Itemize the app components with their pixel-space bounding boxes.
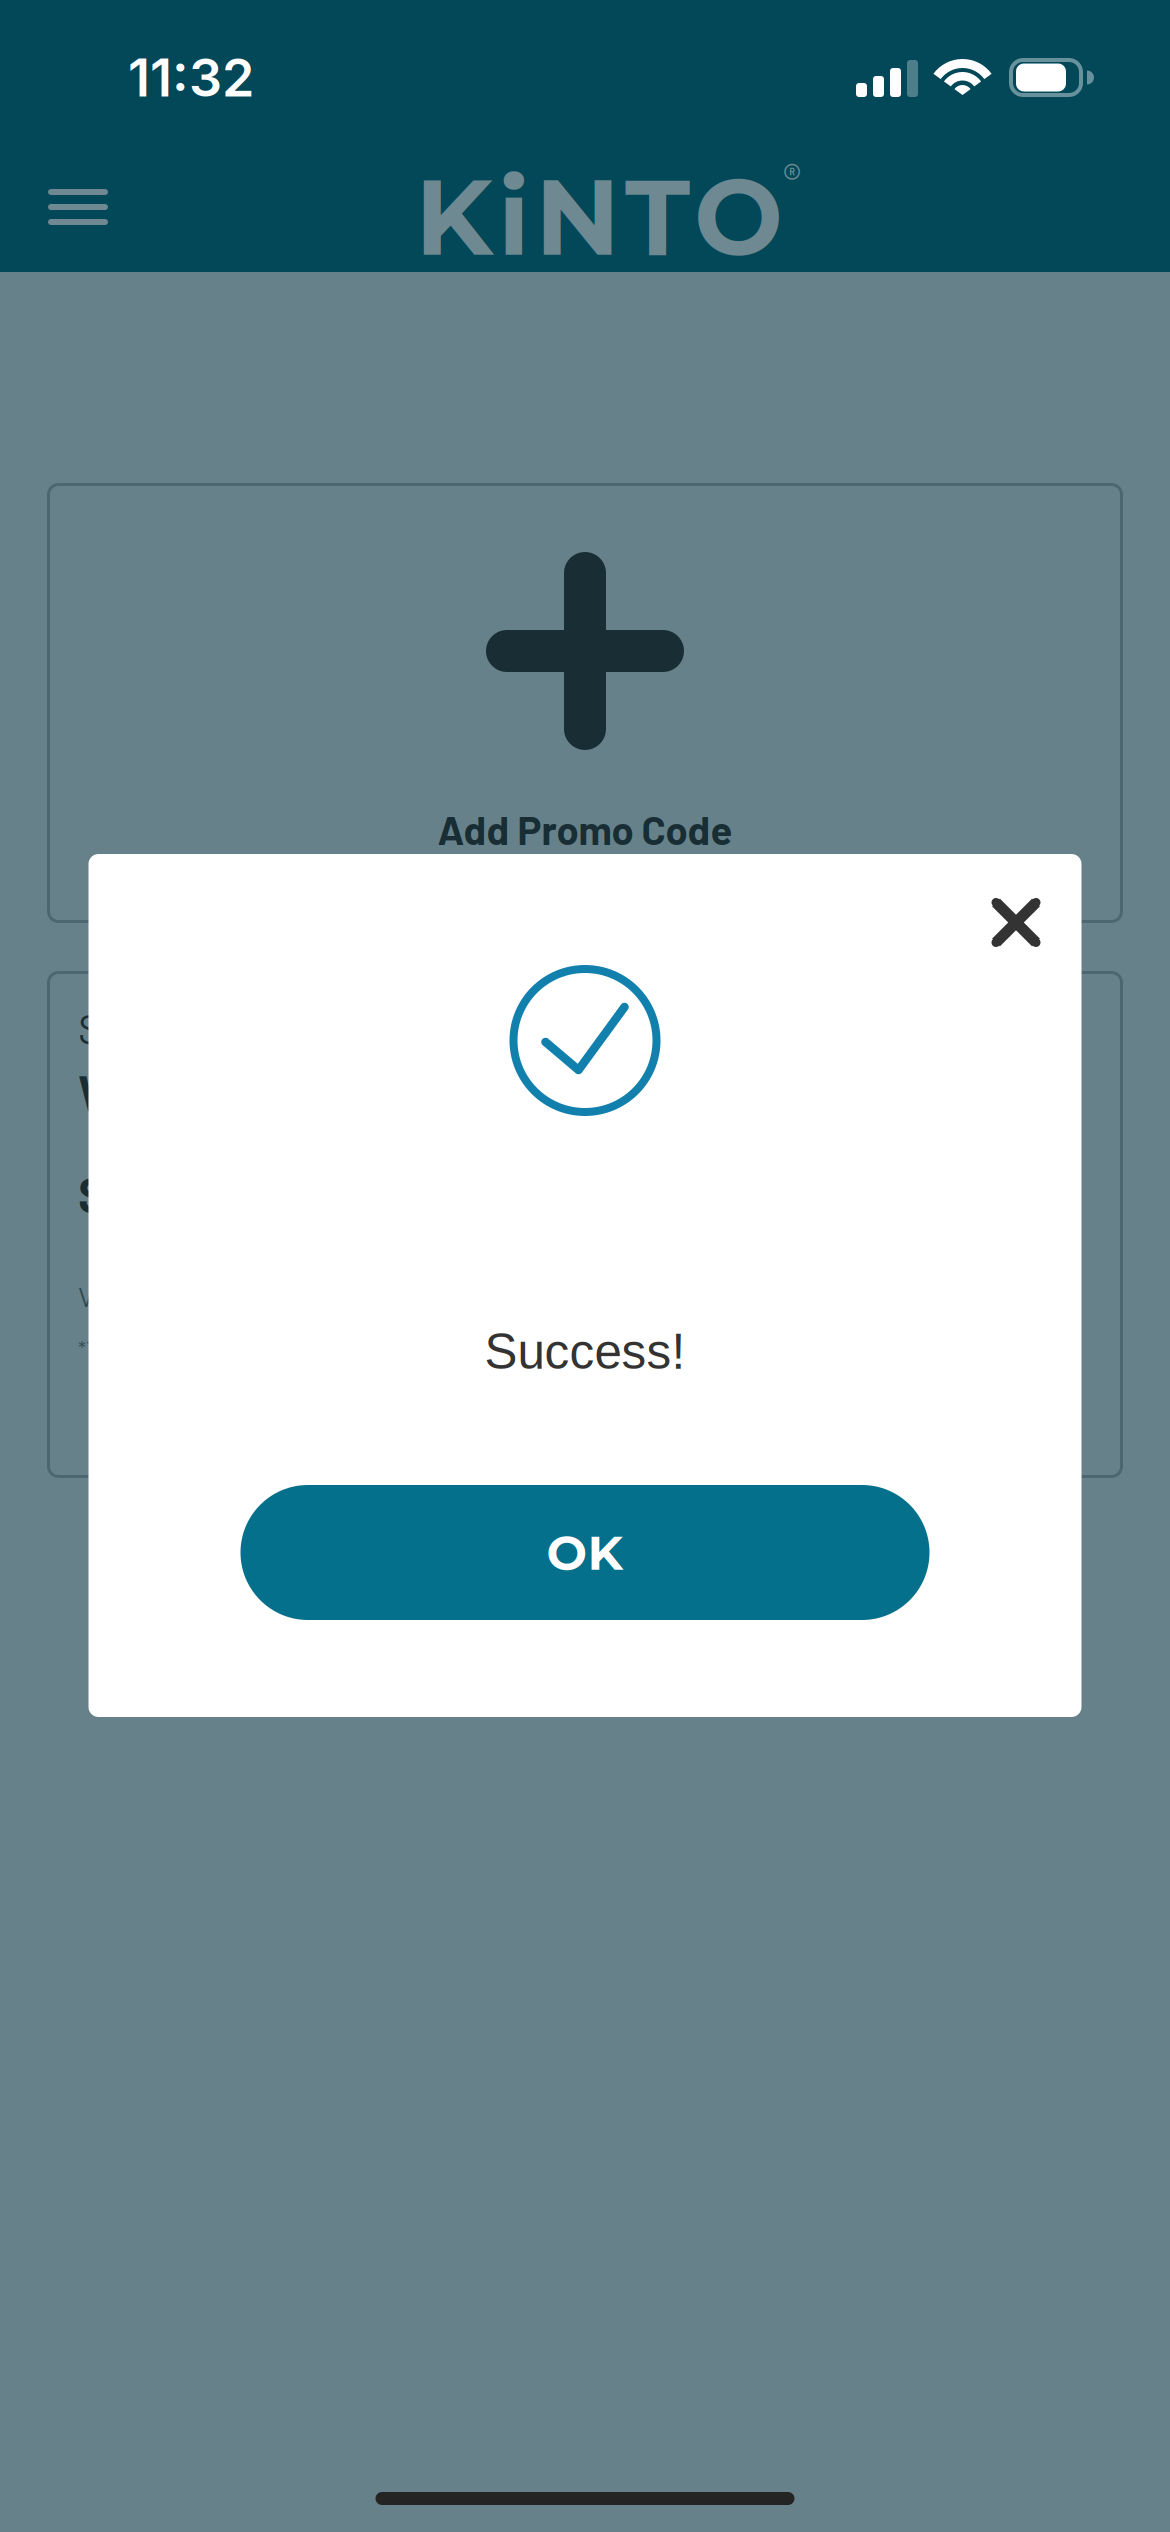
staticText: ®	[783, 153, 801, 201]
staticText: 11:32	[128, 46, 254, 109]
staticText: WIN A	[78, 1062, 210, 1121]
staticText: Add Promo Code	[437, 805, 732, 853]
staticText: Success!	[484, 1324, 685, 1379]
staticText: Save and	[78, 1003, 238, 1053]
button[interactable]: Add Promo Code	[47, 483, 1123, 923]
staticText: Voucher every month	[78, 1279, 335, 1313]
button[interactable]: OK	[240, 1485, 929, 1620]
button[interactable]: Menu	[32, 167, 124, 247]
staticText: KiNTO	[415, 153, 783, 281]
staticText: SHARE	[78, 1164, 230, 1223]
staticText: *Terms and conditions apply	[78, 1336, 323, 1360]
staticText: OK	[546, 1523, 623, 1582]
button[interactable]: Close	[976, 883, 1055, 962]
